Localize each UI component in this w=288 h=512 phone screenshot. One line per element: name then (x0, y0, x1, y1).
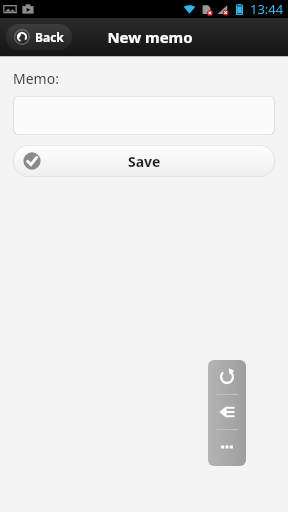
staticText: Save (128, 152, 161, 171)
staticText: 13:44 (250, 0, 284, 18)
staticText: Memo: (13, 69, 59, 88)
button[interactable]: Back (6, 24, 72, 50)
button[interactable] (13, 96, 275, 135)
staticText: Back (35, 29, 64, 45)
staticText: New memo (107, 27, 193, 47)
button[interactable]: Menu (208, 395, 246, 429)
button[interactable]: Save (13, 145, 275, 177)
button[interactable]: More options (208, 430, 246, 464)
button[interactable]: Refresh (208, 360, 246, 394)
